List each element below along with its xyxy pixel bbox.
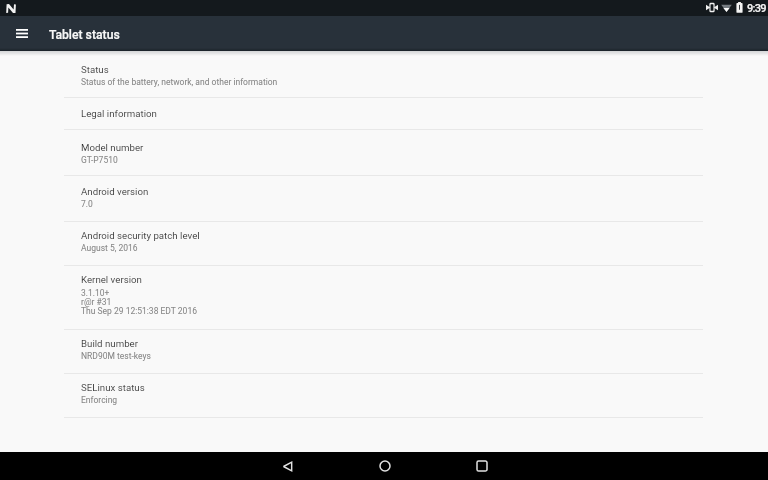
staticText: Build number [81,338,138,349]
button[interactable]: Back [239,452,336,480]
staticText: Thu Sep 29 12:51:38 EDT 2016 [81,306,197,316]
staticText: Android security patch level [81,230,200,241]
staticText: Status of the battery, network, and othe… [81,77,278,87]
staticText: Model number [81,142,144,153]
staticText: NRD90M test-keys [81,351,151,361]
button[interactable] [0,97,768,129]
staticText: 9:39 [747,2,766,15]
staticText: Android version [81,186,149,197]
button[interactable]: Recent apps [433,452,530,480]
button[interactable]: Home [336,452,433,480]
button[interactable] [0,221,768,265]
button[interactable] [0,265,768,329]
staticText: Tablet status [49,28,120,42]
button[interactable] [0,129,768,175]
staticText: Legal information [81,108,157,119]
button[interactable] [0,175,768,221]
staticText: r@r #31 [81,297,112,307]
button[interactable] [0,373,768,417]
staticText: SELinux status [81,382,145,393]
staticText: 3.1.10+ [81,288,110,298]
button[interactable] [0,51,768,97]
staticText: Status [81,64,109,75]
staticText: Enforcing [81,395,118,405]
staticText: Kernel version [81,274,142,285]
staticText: August 5, 2016 [81,243,138,253]
button[interactable]: Open navigation drawer [5,17,38,50]
button[interactable] [0,329,768,373]
staticText: GT-P7510 [81,155,118,165]
staticText: 7.0 [81,199,93,209]
